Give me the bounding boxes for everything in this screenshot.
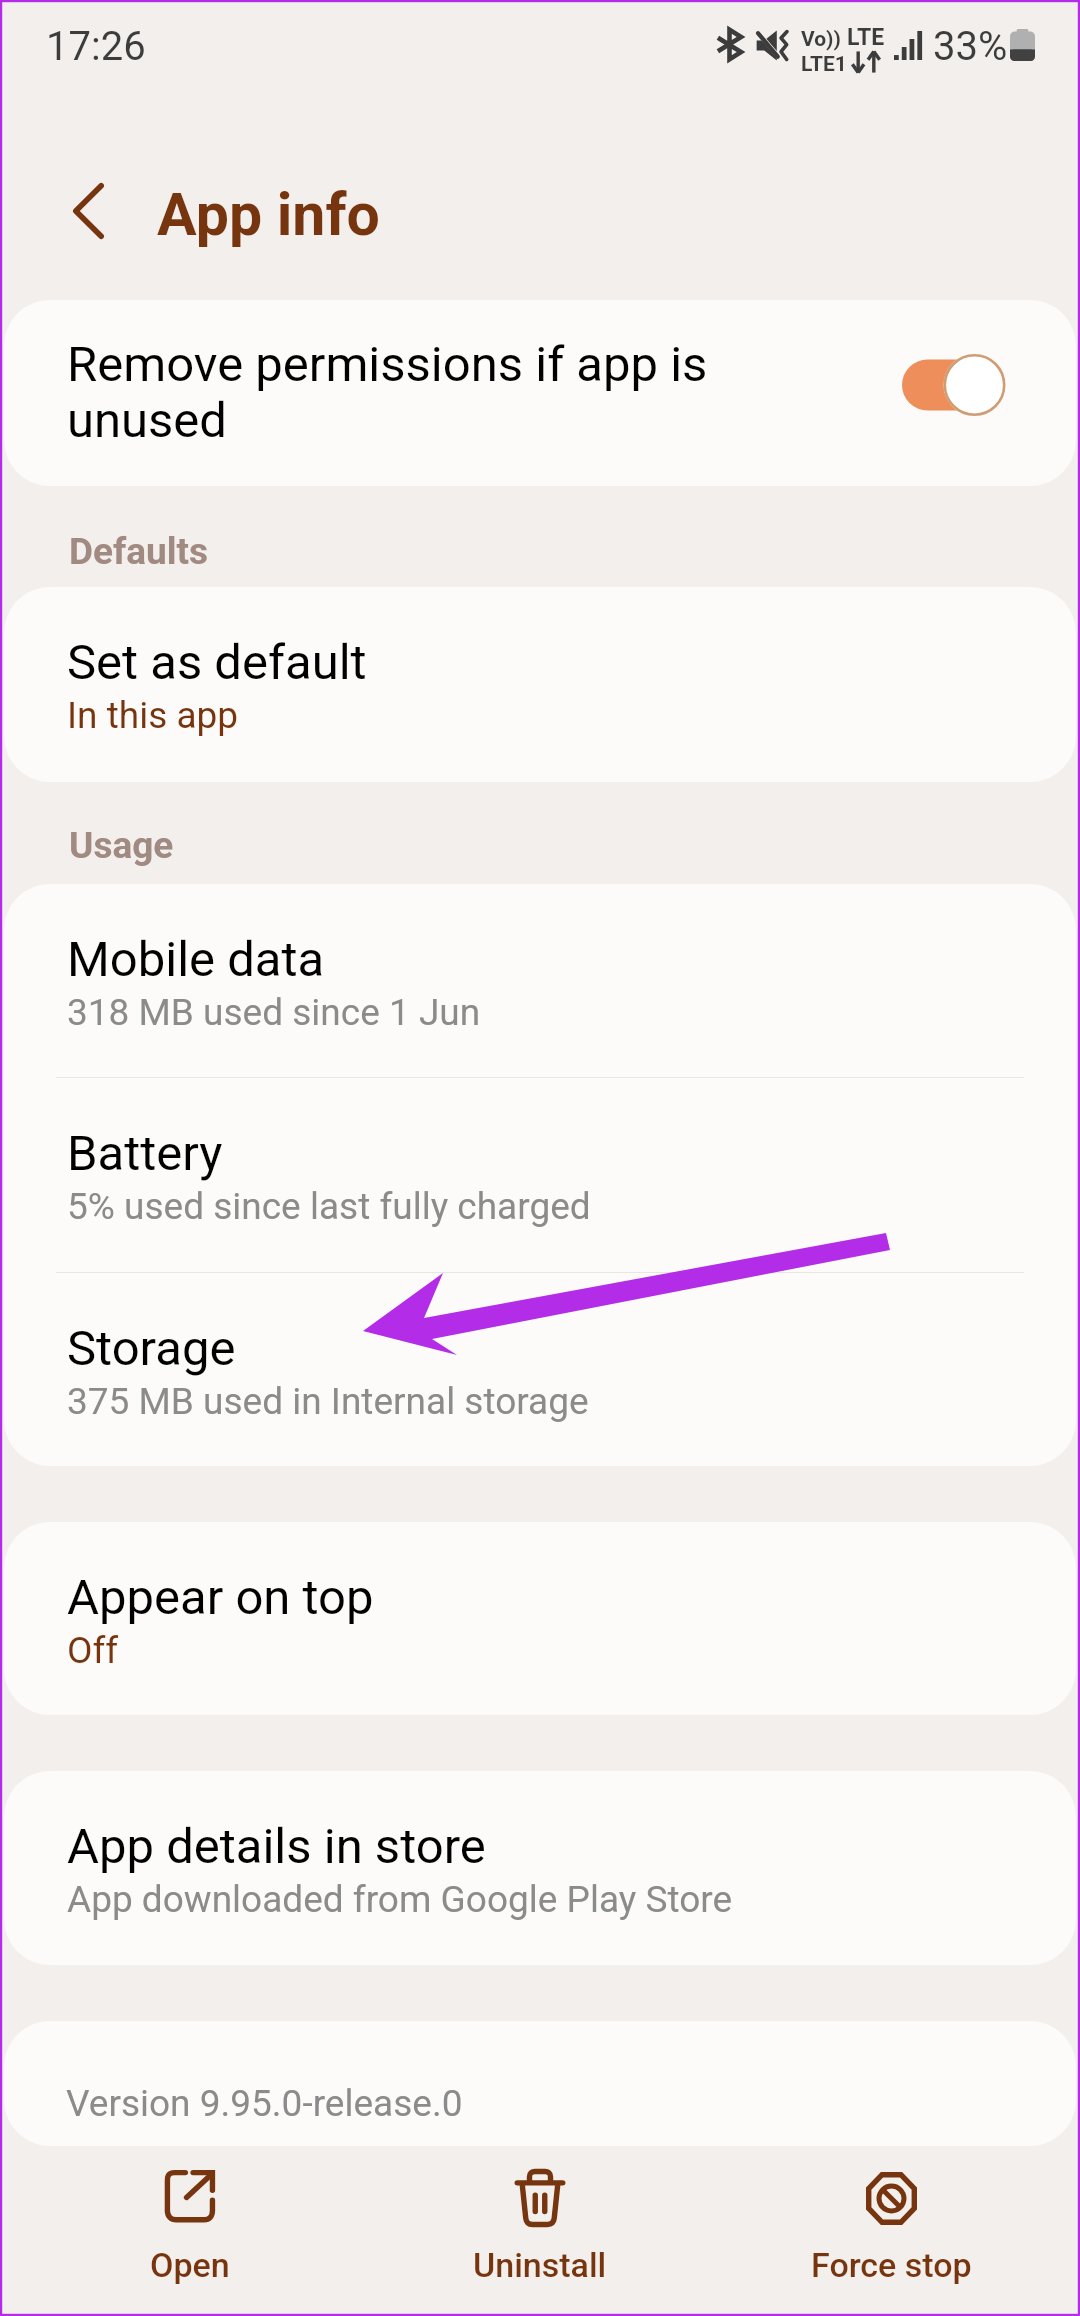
button[interactable]: Set as default: [4, 587, 1076, 782]
button[interactable]: Storage: [4, 1273, 1076, 1466]
button[interactable]: Open app: [60, 2150, 320, 2310]
button[interactable]: Uninstall app: [410, 2150, 670, 2310]
button[interactable]: Remove permissions if app is unused: [4, 300, 1076, 486]
staticText: 17:26: [46, 23, 146, 70]
button[interactable]: Force stop app: [761, 2150, 1021, 2310]
staticText: Battery: [67, 1125, 223, 1182]
staticText: LTE1: [801, 52, 847, 77]
staticText: 5% used since last fully charged: [67, 1185, 591, 1228]
staticText: App details in store: [67, 1818, 486, 1875]
staticText: Defaults: [69, 530, 209, 573]
staticText: Version 9.95.0-release.0: [66, 2082, 463, 2125]
staticText: Set as default: [67, 634, 367, 691]
staticText: Off: [67, 1629, 119, 1672]
staticText: Uninstall: [473, 2245, 607, 2285]
staticText: App downloaded from Google Play Store: [67, 1878, 733, 1921]
staticText: 375 MB used in Internal storage: [67, 1380, 589, 1423]
staticText: Appear on top: [67, 1569, 374, 1626]
staticText: Open: [150, 2245, 230, 2285]
button[interactable]: Battery: [4, 1078, 1076, 1272]
staticText: 318 MB used since 1 Jun: [67, 991, 481, 1034]
staticText: Storage: [67, 1320, 236, 1377]
button[interactable]: [902, 352, 1010, 418]
button[interactable]: Appear on top: [4, 1522, 1076, 1715]
button[interactable]: Back: [40, 163, 136, 259]
staticText: App info: [157, 180, 380, 249]
button[interactable]: App details in store: [4, 1771, 1076, 1965]
staticText: 33%: [933, 23, 1008, 70]
staticText: Force stop: [811, 2245, 972, 2285]
staticText: In this app: [67, 694, 239, 737]
staticText: Remove permissions if app is unused: [67, 337, 747, 449]
staticText: Vo)): [801, 27, 841, 52]
staticText: LTE: [847, 24, 885, 51]
staticText: Usage: [69, 824, 174, 867]
staticText: Mobile data: [67, 931, 325, 988]
button[interactable]: Mobile data: [4, 884, 1076, 1077]
